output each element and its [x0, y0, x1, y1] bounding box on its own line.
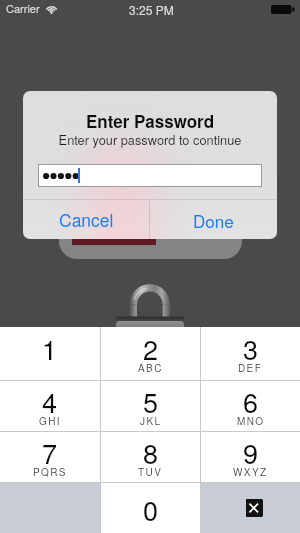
staticText: PQRS: [33, 465, 67, 479]
staticText: 8: [143, 433, 159, 472]
button[interactable]: 3: [201, 327, 300, 380]
staticText: Cancel: [59, 207, 114, 232]
staticText: WXYZ: [233, 465, 268, 479]
button[interactable]: 5: [101, 381, 200, 431]
button[interactable]: 8: [101, 432, 200, 482]
button[interactable]: 0: [101, 483, 200, 533]
staticText: Enter Password: [23, 109, 277, 133]
staticText: 4: [42, 382, 58, 421]
button[interactable]: 7: [0, 432, 100, 482]
staticText: JKL: [140, 414, 162, 428]
staticText: Enter your password to continue: [23, 130, 277, 148]
button[interactable]: Delete: [201, 483, 300, 533]
button[interactable]: 1: [0, 327, 100, 380]
button[interactable]: 2: [101, 327, 200, 380]
button[interactable]: 9: [201, 432, 300, 482]
staticText: MNO: [237, 414, 265, 428]
staticText: 9: [243, 433, 259, 472]
button[interactable]: Cancel: [23, 200, 149, 239]
staticText: GHI: [39, 414, 61, 428]
staticText: Done: [193, 208, 234, 232]
staticText: 0: [143, 490, 159, 529]
staticText: 6: [243, 382, 259, 421]
staticText: 5: [143, 382, 159, 421]
staticText: Carrier: [6, 0, 40, 16]
button[interactable]: 4: [0, 381, 100, 431]
staticText: 3:25 PM: [129, 1, 174, 18]
staticText: TUV: [138, 465, 163, 479]
staticText: DEF: [238, 361, 263, 375]
button[interactable]: Done: [150, 200, 277, 239]
staticText: 3: [243, 329, 259, 368]
staticText: ABC: [138, 361, 163, 375]
staticText: 2: [143, 329, 159, 368]
staticText: 1: [42, 329, 58, 368]
button[interactable]: 6: [201, 381, 300, 431]
staticText: 7: [42, 433, 58, 472]
